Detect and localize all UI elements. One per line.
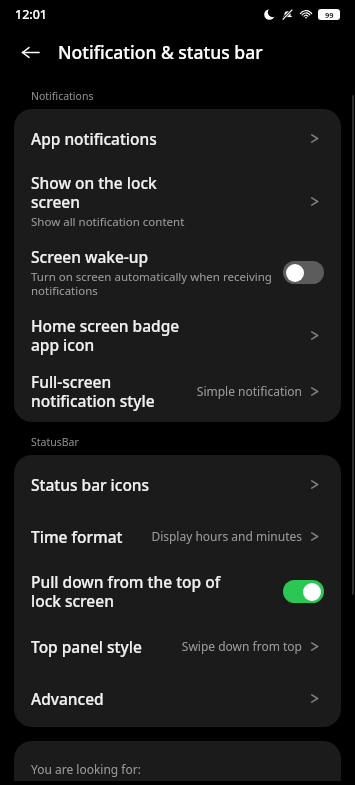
staticText: You are looking for: — [31, 761, 141, 777]
button[interactable]: App notifications — [14, 112, 341, 164]
staticText: Swipe down from top — [154, 638, 302, 654]
staticText: Pull down from the top of lock screen — [31, 571, 229, 611]
button[interactable]: Time format — [14, 510, 341, 562]
button[interactable]: Status bar icons — [14, 458, 341, 510]
staticText: Turn on screen automatically when receiv… — [31, 269, 276, 299]
staticText: Full-screen notification style — [31, 371, 172, 411]
staticText: 12:01 — [15, 6, 48, 23]
staticText: StatusBar — [31, 435, 79, 449]
staticText: Advanced — [31, 688, 104, 709]
staticText: App notifications — [31, 128, 157, 149]
button[interactable]: Home screen badge app icon — [14, 307, 341, 363]
staticText: Time format — [31, 526, 123, 547]
staticText: Notification & status bar — [58, 40, 263, 64]
button[interactable]: Show on the lock screen — [14, 164, 341, 238]
staticText: Show on the lock screen — [31, 172, 194, 212]
staticText: Status bar icons — [31, 474, 150, 495]
staticText: Display hours and minutes — [138, 528, 302, 544]
button[interactable]: Screen wake-up — [14, 238, 341, 307]
button[interactable]: Toggle off — [283, 261, 324, 284]
staticText: Top panel style — [31, 636, 142, 657]
staticText: Home screen badge app icon — [31, 315, 194, 355]
button[interactable]: Toggle on — [283, 580, 324, 603]
button[interactable]: Back — [13, 35, 47, 69]
button[interactable]: Top panel style — [14, 620, 341, 672]
staticText: Screen wake-up — [31, 246, 149, 267]
staticText: Show all notification content — [31, 214, 185, 230]
button[interactable]: Advanced — [14, 672, 341, 724]
staticText: 99 — [325, 10, 334, 20]
staticText: Simple notification — [176, 383, 302, 399]
button[interactable]: Pull down from the top of lock screen — [14, 562, 341, 620]
button[interactable]: Full-screen notification style — [14, 363, 341, 419]
staticText: Notifications — [31, 89, 94, 103]
